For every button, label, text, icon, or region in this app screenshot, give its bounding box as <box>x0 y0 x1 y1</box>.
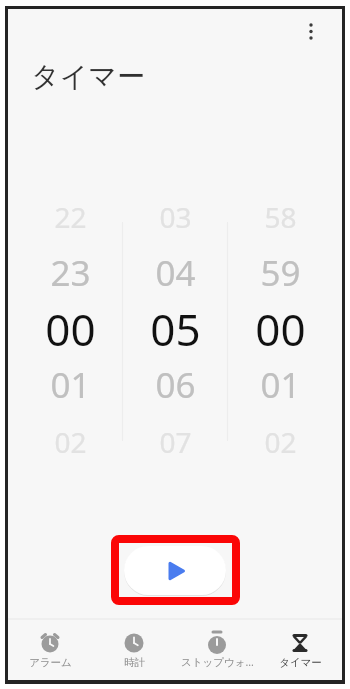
staticText: 58 <box>264 198 297 236</box>
staticText: 03 <box>159 198 192 236</box>
staticText: 00 <box>45 299 96 359</box>
button[interactable] <box>93 620 175 680</box>
staticText: タイマー <box>31 59 145 94</box>
button[interactable] <box>297 11 325 53</box>
staticText: 01 <box>50 361 91 409</box>
staticText: 00 <box>255 299 306 359</box>
staticText: 07 <box>159 423 192 461</box>
staticText: 02 <box>54 423 87 461</box>
staticText: 05 <box>150 299 201 359</box>
staticText: 06 <box>155 361 196 409</box>
staticText: 時計 <box>124 656 145 669</box>
staticText: タイマー <box>279 656 322 669</box>
staticText: 22 <box>54 198 87 236</box>
button[interactable] <box>124 546 226 595</box>
staticText: ストップウォ… <box>181 655 254 669</box>
staticText: 04 <box>155 249 196 297</box>
staticText: 02 <box>264 423 297 461</box>
staticText: 01 <box>260 361 301 409</box>
staticText: 23 <box>50 249 91 297</box>
button[interactable] <box>176 620 258 680</box>
button[interactable] <box>259 620 341 680</box>
button[interactable] <box>9 620 91 680</box>
staticText: アラーム <box>29 656 72 669</box>
staticText: 59 <box>260 249 301 297</box>
